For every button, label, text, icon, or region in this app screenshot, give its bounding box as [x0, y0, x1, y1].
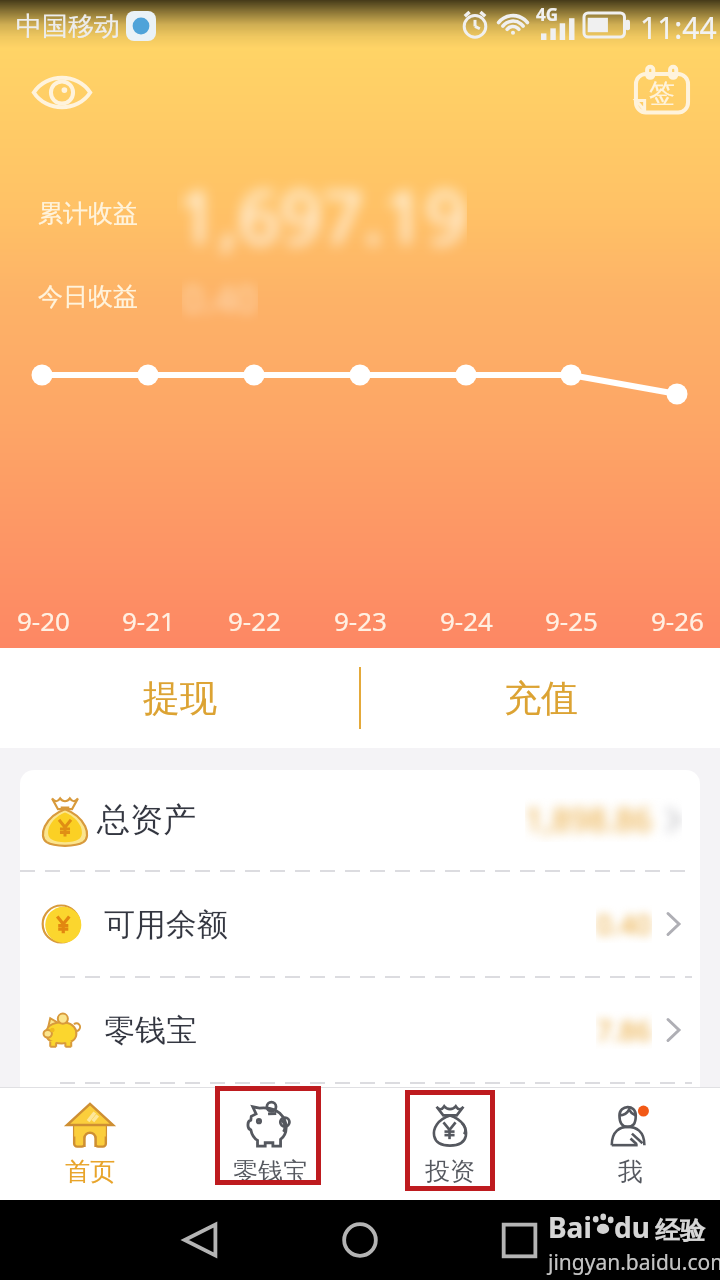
staticText: 总资产 — [97, 799, 196, 841]
staticText: 1,697.19 — [177, 166, 467, 265]
staticText: du — [614, 1208, 650, 1246]
staticText: 我 — [618, 1156, 643, 1187]
staticText: 0.40 — [182, 272, 258, 324]
staticText: 可用余额 — [104, 905, 228, 944]
staticText: 1,898.86 — [525, 798, 652, 842]
staticText: 9-20 — [17, 603, 70, 638]
staticText: 投资 — [425, 1156, 475, 1187]
button[interactable]: Daily check in — [631, 63, 693, 118]
staticText: 9-25 — [545, 603, 598, 638]
button[interactable]: 首页 — [0, 1087, 180, 1200]
staticText: 9-21 — [122, 603, 175, 638]
staticText: 零钱宝 — [233, 1156, 308, 1187]
staticText: 经验 — [655, 1215, 705, 1246]
staticText: 9-24 — [440, 603, 493, 638]
staticText: 9-23 — [334, 603, 387, 638]
button[interactable]: 充值 — [361, 648, 720, 748]
button[interactable]: 零钱宝 — [20, 978, 700, 1082]
button[interactable]: Recent apps — [496, 1216, 544, 1264]
staticText: 零钱宝 — [104, 1011, 197, 1050]
staticText: 今日收益 — [38, 281, 138, 312]
staticText: 9-22 — [228, 603, 281, 638]
staticText: 11:44 — [640, 7, 717, 48]
button[interactable]: 总资产 — [20, 770, 700, 870]
staticText: 累计收益 — [38, 198, 138, 229]
staticText: 7.86 — [596, 1011, 652, 1049]
button[interactable]: Back — [177, 1216, 225, 1264]
staticText: 0.40 — [596, 905, 652, 943]
button[interactable]: 我 — [540, 1087, 720, 1200]
staticText: 充值 — [504, 675, 578, 722]
staticText: 提现 — [143, 675, 217, 722]
staticText: 首页 — [65, 1156, 115, 1187]
staticText: 9-26 — [651, 603, 704, 638]
staticText: 中国移动 — [16, 10, 120, 43]
button[interactable]: 零钱宝 — [180, 1087, 360, 1200]
button[interactable]: Home — [336, 1216, 384, 1264]
staticText: Bai — [548, 1208, 592, 1246]
staticText: jingyan.baidu.com — [548, 1248, 720, 1277]
button[interactable]: 投资 — [360, 1087, 540, 1200]
button[interactable]: Toggle balance visibility — [32, 72, 92, 113]
staticText: 4G — [536, 3, 559, 26]
staticText: 签 — [649, 77, 675, 110]
button[interactable]: 提现 — [0, 648, 359, 748]
button[interactable]: 可用余额 — [20, 872, 700, 976]
